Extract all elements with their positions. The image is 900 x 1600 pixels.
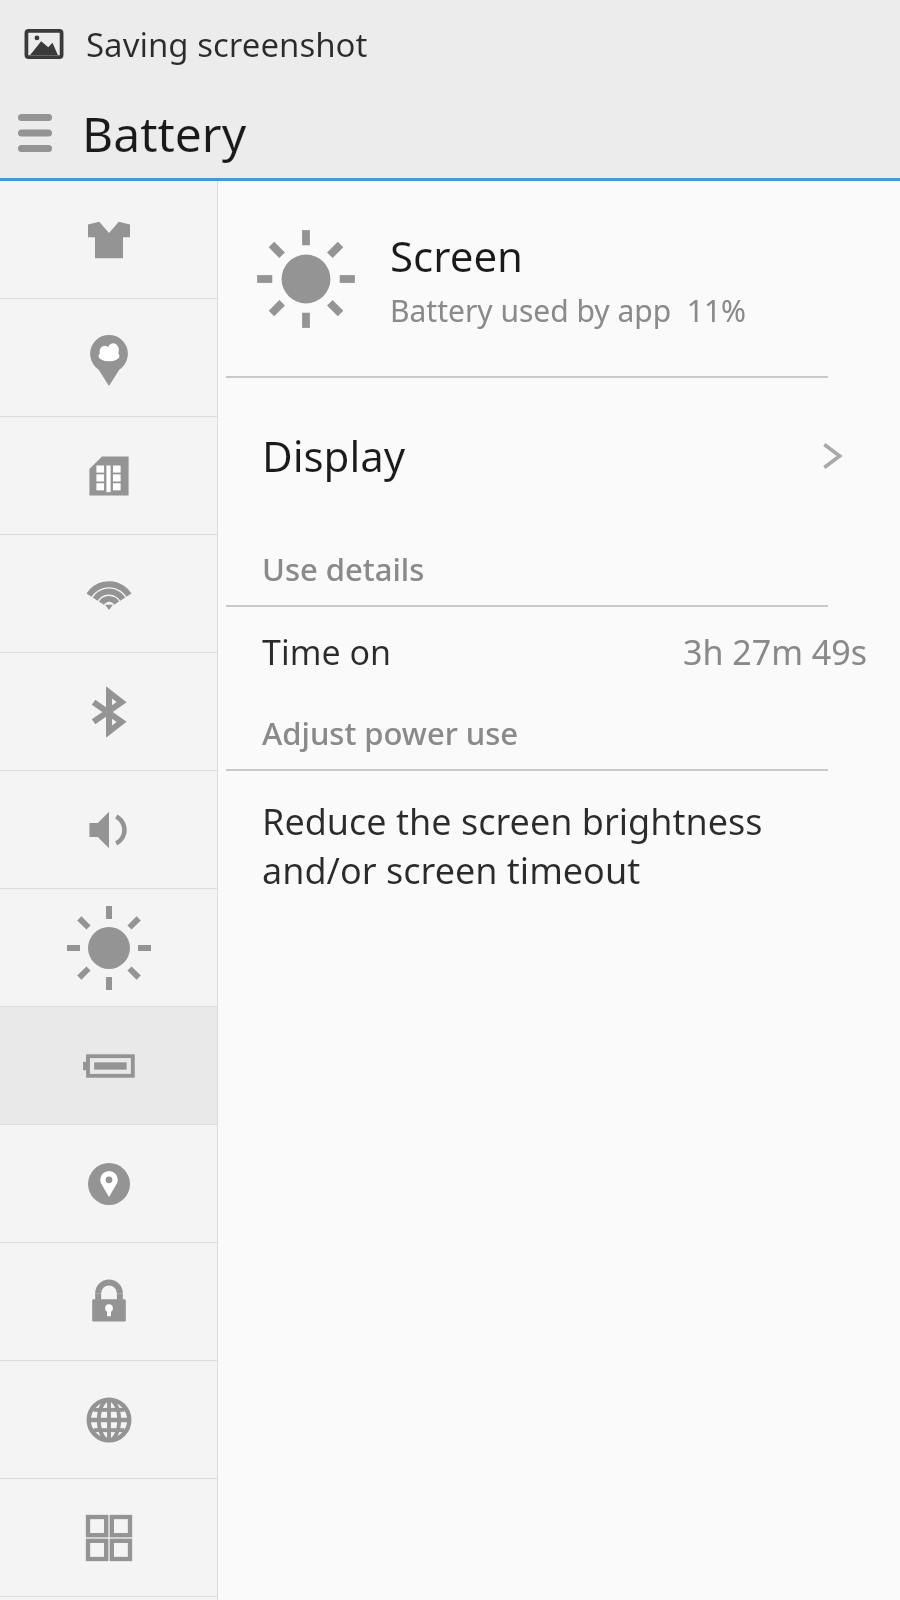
- button[interactable]: Themes: [0, 181, 217, 299]
- staticText: Adjust power use: [262, 712, 519, 754]
- staticText: Battery used by app 11%: [390, 290, 747, 331]
- button[interactable]: Location: [0, 1125, 217, 1243]
- button[interactable]: Screen: [218, 181, 900, 376]
- button[interactable]: Wi-Fi: [0, 535, 217, 653]
- staticText: 3h 27m 49s: [683, 629, 868, 675]
- button[interactable]: Weather: [0, 299, 217, 417]
- staticText: Saving screenshot: [86, 22, 368, 67]
- button[interactable]: Language: [0, 1361, 217, 1479]
- button[interactable]: Brightness: [0, 889, 217, 1007]
- staticText: Display: [262, 427, 406, 484]
- button[interactable]: Security: [0, 1243, 217, 1361]
- button[interactable]: Apps: [0, 1479, 217, 1597]
- button[interactable]: Sound: [0, 771, 217, 889]
- button[interactable]: Display: [218, 378, 900, 533]
- staticText: Battery: [82, 101, 247, 166]
- button[interactable]: Time on: [218, 607, 900, 697]
- staticText: Use details: [262, 548, 425, 590]
- button[interactable]: SIM cards: [0, 417, 217, 535]
- button[interactable]: Battery: [0, 1007, 217, 1125]
- button[interactable]: Bluetooth: [0, 653, 217, 771]
- staticText: Reduce the screen brightness and/or scre…: [262, 797, 763, 894]
- staticText: Time on: [262, 629, 392, 675]
- button[interactable]: Open navigation menu: [0, 102, 70, 164]
- staticText: Screen: [390, 227, 524, 284]
